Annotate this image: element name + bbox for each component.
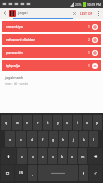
button[interactable]: o — [83, 115, 92, 130]
staticText: y — [57, 120, 59, 125]
button[interactable]: i — [73, 115, 82, 130]
button[interactable]: More options — [95, 10, 102, 17]
staticText: rahavani dlaktar — [6, 37, 88, 42]
staticText: l — [93, 137, 94, 142]
button[interactable]: x — [28, 148, 37, 164]
button[interactable]: rahavani dlaktar — [2, 34, 101, 45]
button[interactable]: smankiya — [2, 21, 101, 32]
staticText: i — [77, 120, 78, 125]
staticText: mon · idi · vanini — [5, 82, 29, 86]
button[interactable]: a — [5, 131, 15, 147]
button[interactable]: g — [49, 131, 58, 147]
staticText: p — [96, 120, 99, 125]
button[interactable]: w — [12, 115, 22, 130]
button[interactable]: Backspace — [88, 148, 102, 164]
button[interactable]: f — [38, 131, 48, 147]
staticText: j — [73, 137, 74, 142]
staticText: w — [16, 120, 19, 125]
button[interactable]: Add — [92, 37, 98, 43]
staticText: h — [62, 137, 65, 142]
staticText: g — [52, 137, 55, 142]
button[interactable]: Shift — [1, 148, 16, 164]
button[interactable]: q — [1, 115, 11, 130]
button[interactable]: z — [17, 148, 27, 164]
staticText: v — [52, 154, 54, 159]
button[interactable]: y — [53, 115, 62, 130]
button[interactable]: LIST OF — [78, 11, 95, 16]
button[interactable]: Back — [1, 9, 9, 17]
button[interactable]: t — [43, 115, 52, 130]
staticText: jagai — [18, 10, 71, 16]
staticText: u — [66, 120, 69, 125]
staticText: 2 — [88, 38, 90, 42]
staticText: f — [42, 137, 44, 142]
button[interactable]: Clear — [71, 10, 78, 17]
button[interactable]: EN — [15, 165, 27, 181]
staticText: e — [26, 120, 29, 125]
staticText: o — [86, 120, 89, 125]
staticText: a — [9, 137, 12, 142]
staticText: d — [31, 137, 34, 142]
staticText: 1 — [88, 51, 90, 55]
button[interactable]: r — [33, 115, 42, 130]
staticText: b — [61, 154, 64, 159]
button[interactable]: s — [16, 131, 26, 147]
staticText: n — [71, 154, 74, 159]
button[interactable]: Add — [92, 50, 98, 56]
button[interactable]: Remove — [92, 63, 98, 69]
button[interactable]: Enter — [89, 165, 102, 181]
staticText: , — [32, 171, 33, 176]
staticText: tykpalja — [6, 63, 88, 68]
button[interactable]: Add — [92, 24, 98, 30]
button[interactable]: n — [68, 148, 77, 164]
button[interactable]: j — [69, 131, 78, 147]
button[interactable]: v — [48, 148, 57, 164]
button[interactable]: Voice input — [79, 165, 88, 181]
button[interactable]: m — [78, 148, 87, 164]
button[interactable]: u — [63, 115, 72, 130]
staticText: c — [42, 154, 44, 159]
button[interactable]: Symbols — [1, 165, 14, 181]
button[interactable]: c — [38, 148, 47, 164]
button[interactable]: Space — [38, 165, 78, 181]
button[interactable]: e — [23, 115, 32, 130]
button[interactable]: d — [27, 131, 37, 147]
button[interactable]: parвасtin — [2, 47, 101, 58]
button[interactable]: p — [93, 115, 102, 130]
staticText: k — [83, 137, 85, 142]
staticText: EN — [19, 171, 23, 175]
staticText: s — [20, 137, 22, 142]
staticText: 23% — [75, 3, 82, 7]
staticText: smankiya — [6, 24, 88, 29]
button[interactable]: k — [79, 131, 88, 147]
staticText: t — [47, 120, 49, 125]
button[interactable]: l — [89, 131, 98, 147]
staticText: x — [32, 154, 34, 159]
button[interactable]: , — [28, 165, 37, 181]
staticText: LIST OF — [80, 11, 93, 16]
staticText: m — [81, 154, 85, 159]
staticText: 1 — [88, 25, 90, 29]
button[interactable]: tykpalja — [2, 60, 101, 71]
staticText: q — [5, 120, 8, 125]
button[interactable]: b — [58, 148, 67, 164]
staticText: parвасtin — [6, 50, 88, 55]
staticText: z — [21, 154, 23, 159]
button[interactable]: h — [59, 131, 68, 147]
staticText: 1 — [88, 64, 90, 68]
staticText: r — [37, 120, 39, 125]
staticText: jagalmanh — [5, 75, 24, 80]
staticText: 10:19 PM — [87, 3, 101, 7]
button[interactable]: App icon — [9, 10, 16, 17]
